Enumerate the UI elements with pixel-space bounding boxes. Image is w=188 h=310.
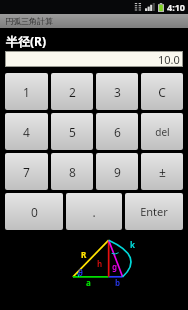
- button[interactable]: 6: [96, 113, 138, 150]
- staticText: 10.0: [158, 52, 180, 67]
- staticText: k: [130, 239, 135, 250]
- staticText: 5: [69, 124, 76, 140]
- staticText: 2: [69, 84, 76, 100]
- staticText: 9: [114, 164, 121, 180]
- button[interactable]: 0: [5, 193, 63, 230]
- staticText: R: [81, 249, 87, 260]
- staticText: 6: [114, 124, 121, 140]
- button[interactable]: 10.0: [5, 51, 183, 67]
- button[interactable]: C: [141, 73, 183, 110]
- staticText: .: [92, 204, 96, 220]
- button[interactable]: 9: [96, 153, 138, 190]
- button[interactable]: ±: [141, 153, 183, 190]
- staticText: 8: [69, 164, 76, 180]
- staticText: 7: [23, 164, 30, 180]
- staticText: 4: [23, 124, 30, 140]
- staticText: a: [86, 277, 91, 288]
- staticText: 円弧三角計算: [5, 16, 53, 26]
- button[interactable]: .: [66, 193, 122, 230]
- staticText: h: [97, 258, 103, 269]
- staticText: θ: [78, 267, 83, 278]
- button[interactable]: 5: [51, 113, 93, 150]
- staticText: 0: [31, 204, 38, 220]
- button[interactable]: 7: [5, 153, 48, 190]
- button[interactable]: 4: [5, 113, 48, 150]
- staticText: C: [158, 84, 166, 100]
- staticText: ±: [159, 164, 166, 180]
- button[interactable]: 2: [51, 73, 93, 110]
- staticText: del: [155, 125, 170, 139]
- staticText: 3: [114, 84, 121, 100]
- staticText: b: [115, 277, 121, 288]
- staticText: g: [112, 261, 118, 272]
- staticText: 半径(R): [6, 33, 47, 49]
- staticText: 4:10: [167, 1, 185, 13]
- button[interactable]: 円弧三角計算: [0, 14, 188, 28]
- button[interactable]: Enter: [125, 193, 183, 230]
- button[interactable]: del: [141, 113, 183, 150]
- staticText: Enter: [140, 204, 168, 219]
- staticText: 1: [23, 84, 30, 100]
- other: Arc triangle diagram: [0, 233, 188, 293]
- button[interactable]: 3: [96, 73, 138, 110]
- button[interactable]: 8: [51, 153, 93, 190]
- button[interactable]: 1: [5, 73, 48, 110]
